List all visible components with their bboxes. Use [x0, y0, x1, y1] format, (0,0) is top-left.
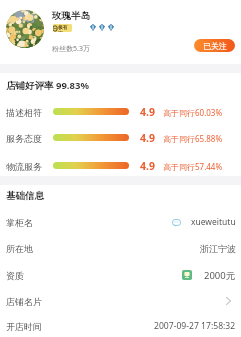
- staticText: 玫瑰半岛: [52, 10, 90, 22]
- staticText: 高于同行65.88%: [163, 133, 223, 144]
- staticText: 4.9: [140, 105, 155, 119]
- staticText: 2000元: [204, 269, 236, 282]
- button[interactable]: 资质: [0, 264, 241, 286]
- button[interactable]: 店铺名片: [0, 290, 241, 312]
- staticText: 高于同行57.44%: [163, 161, 223, 172]
- staticText: 资质: [6, 270, 24, 281]
- staticText: 掌柜名: [6, 217, 33, 228]
- button[interactable]: 描述相符: [0, 104, 241, 120]
- staticText: 服务态度: [6, 133, 42, 144]
- staticText: 所在地: [6, 243, 33, 254]
- staticText: 物流服务: [6, 161, 42, 172]
- staticText: 店铺名片: [6, 296, 42, 307]
- staticText: 4.9: [140, 131, 155, 145]
- staticText: 描述相符: [6, 107, 42, 118]
- staticText: 粉丝数5.3万: [52, 44, 90, 54]
- staticText: xueweitutu: [191, 216, 236, 228]
- staticText: 基础信息: [6, 190, 44, 202]
- button[interactable]: 开店时间: [0, 315, 241, 337]
- staticText: 已关注: [203, 41, 227, 51]
- staticText: 4.9: [140, 159, 155, 173]
- button[interactable]: 所在地: [0, 237, 241, 259]
- button[interactable]: 掌柜名: [0, 211, 241, 233]
- staticText: 店铺好评率 99.83%: [6, 79, 89, 92]
- staticText: 浙江宁波: [200, 243, 236, 254]
- staticText: 2007-09-27 17:58:32: [154, 320, 236, 332]
- staticText: 开店时间: [6, 321, 42, 332]
- button[interactable]: 已关注: [194, 39, 235, 52]
- button[interactable]: 物流服务: [0, 158, 241, 174]
- staticText: 极有家: [58, 24, 72, 32]
- button[interactable]: 服务态度: [0, 130, 241, 146]
- staticText: 高于同行60.03%: [163, 107, 223, 118]
- button[interactable]: 极有家: [53, 24, 72, 32]
- button[interactable]: Shop avatar: [6, 10, 44, 48]
